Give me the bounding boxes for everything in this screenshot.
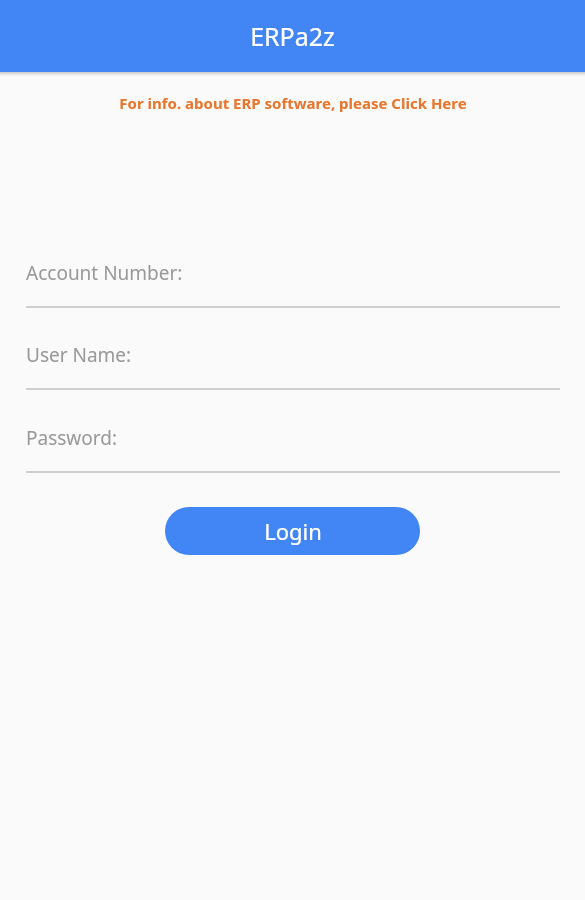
button[interactable]: Account Number: [26,249,560,308]
button[interactable]: Password: [26,414,560,473]
staticText: Account Number: [26,260,183,286]
staticText: Login [264,516,322,546]
button[interactable]: Login [165,507,420,555]
staticText: User Name: [26,342,132,368]
button[interactable]: User Name: [26,331,560,390]
staticText: Password: [26,425,118,451]
staticText: For info. about ERP software, please Cli… [119,93,467,113]
button[interactable]: For info. about ERP software, please Cli… [0,93,585,113]
staticText: ERPa2z [250,19,335,53]
